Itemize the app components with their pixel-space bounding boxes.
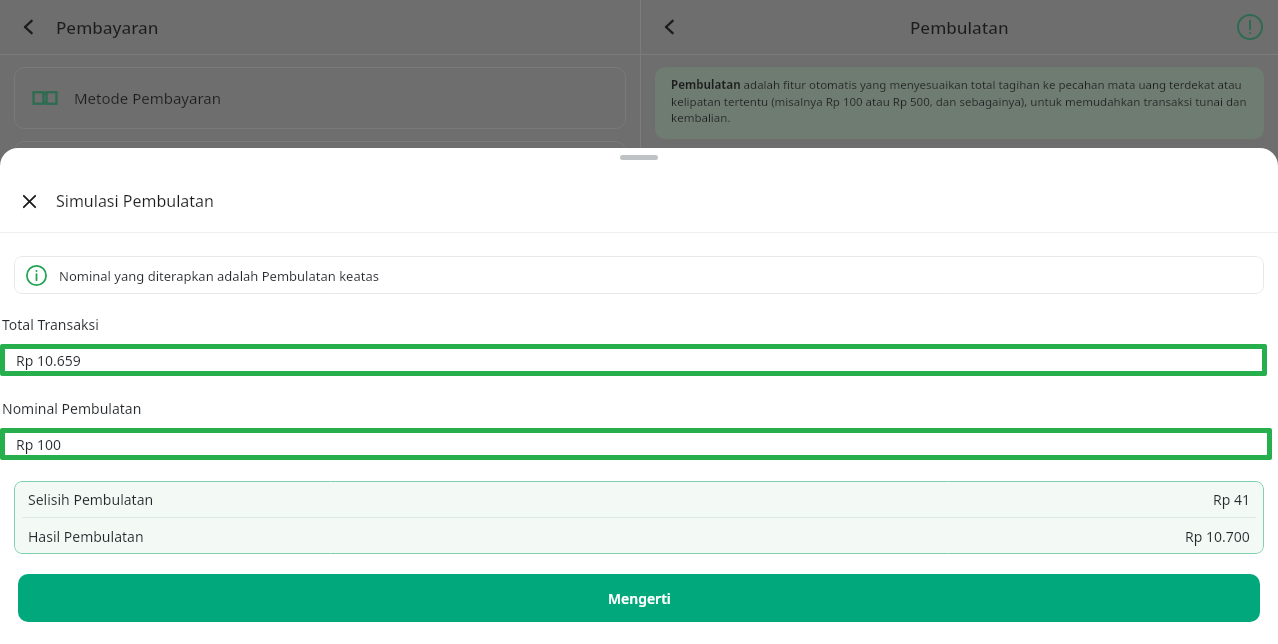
staticText: Rp 100 [16,435,61,454]
staticText: Metode Pembayaran [74,88,221,108]
staticText: Rp 10.700 [1185,527,1250,546]
staticText: Pembayaran [56,16,159,39]
button[interactable]: Rp 10.659 [0,344,1267,376]
staticText: Selisih Pembulatan [28,490,154,509]
staticText: Nominal Pembulatan [2,399,142,418]
button[interactable]: Mengerti [18,574,1260,622]
button[interactable]: Metode Pembayaran [14,67,626,129]
staticText: Mengerti [608,589,671,608]
button[interactable]: Rp 100 [0,428,1272,460]
staticText: Pembulatan adalah fitur otomatis yang me… [671,77,1248,125]
button[interactable] [14,141,626,201]
staticText: Simulasi Pembulatan [56,190,214,212]
staticText: Hasil Pembulatan [28,527,144,546]
staticText: Rp 41 [1213,490,1250,509]
button[interactable]: Information [1234,11,1266,43]
button[interactable]: Close [14,186,44,216]
button[interactable]: Back [655,12,685,42]
staticText: Nominal yang diterapkan adalah Pembulata… [59,267,379,285]
staticText: Total Transaksi [2,315,99,334]
staticText: Rp 10.659 [16,351,81,370]
button[interactable]: Back [14,12,44,42]
staticText: Pembulatan [910,16,1009,39]
